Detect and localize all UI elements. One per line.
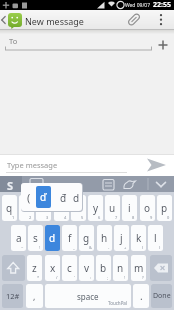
button[interactable]: q [2,195,17,221]
staticText: Done [153,291,171,301]
button[interactable]: i [122,195,137,221]
staticText: 6 [98,215,101,220]
staticText: 7 [115,215,118,220]
button[interactable]: ď [36,186,51,208]
staticText: 8 [132,215,135,220]
staticText: space [77,291,99,302]
staticText: S [7,178,14,193]
staticText: . [140,289,143,303]
staticText: 3 [46,215,49,220]
button[interactable]: d [45,225,60,251]
staticText: + [124,245,127,250]
staticText: a [16,231,22,245]
staticText: 9 [150,215,153,220]
button[interactable]: a [11,225,26,251]
staticText: ; [107,275,109,280]
staticText: đ [60,191,67,205]
staticText: ( [142,245,144,250]
staticText: x [50,261,56,275]
button[interactable]: f [62,225,77,251]
staticText: To [9,36,18,46]
staticText: n [117,261,124,275]
staticText: ) [159,245,161,250]
staticText: q [6,201,13,215]
staticText: 0 [167,215,170,220]
staticText: * [37,275,40,280]
button[interactable]: l [148,225,163,251]
staticText: ~ [21,245,24,250]
staticText: g [83,231,90,245]
staticText: k [136,231,142,245]
staticText: , [33,290,36,302]
staticText: / [56,275,58,280]
button[interactable]: w [19,195,34,221]
staticText: ? [142,275,144,280]
staticText: _ [73,245,75,250]
staticText: 2 [29,215,32,220]
staticText: p [161,201,168,215]
staticText: 5 [81,215,84,220]
staticText: s [33,231,38,245]
button[interactable] [0,176,174,192]
button[interactable]: p [157,195,172,221]
staticText: 4 [64,215,67,220]
button[interactable]: , [26,284,43,308]
button[interactable]: c [62,255,77,281]
button[interactable] [0,176,22,192]
staticText: d [49,231,56,245]
staticText: d [73,191,80,205]
button[interactable] [150,255,172,281]
staticText: ď [40,190,47,204]
button[interactable]: m [131,255,146,281]
staticText: Wed 09/07 [125,2,151,9]
staticText: ' [74,275,75,280]
staticText: Type message [7,160,58,170]
button[interactable]: o [140,195,155,221]
staticText: w [23,201,31,215]
button[interactable]: y [88,195,103,221]
button[interactable]: space [45,284,131,308]
staticText: ( [27,190,31,205]
button[interactable]: 12# [2,284,23,308]
staticText: ! [39,245,41,250]
button[interactable]: g [79,225,94,251]
button[interactable]: z [27,255,42,281]
button[interactable]: s [28,225,43,251]
button[interactable]: x [45,255,60,281]
staticText: z [32,261,37,275]
staticText: b [100,261,107,275]
staticText: m [134,261,144,275]
button[interactable]: t [71,195,86,221]
staticText: o [144,201,151,215]
button[interactable]: . [133,284,149,308]
staticText: TouchPal [108,300,128,306]
button[interactable]: h [97,225,112,251]
staticText: c [67,261,72,275]
button[interactable] [2,255,25,281]
button[interactable]: r [54,195,69,221]
staticText: f [68,231,72,245]
staticText: : [90,275,92,280]
staticText: r [59,201,64,215]
staticText: e [41,201,47,215]
button[interactable]: n [113,255,128,281]
button[interactable]: v [79,255,94,281]
staticText: ! [124,275,126,280]
button[interactable]: b [96,255,111,281]
staticText: v [84,261,90,275]
staticText: h [101,231,108,245]
staticText: 1 [12,215,15,220]
staticText: & [89,245,92,250]
staticText: j [120,231,123,245]
button[interactable]: e [36,195,51,221]
button[interactable] [8,13,22,27]
staticText: 22:55 [153,0,171,10]
staticText: t [77,201,81,215]
button[interactable]: u [105,195,120,221]
button[interactable]: k [131,225,146,251]
staticText: l [154,231,157,245]
button[interactable]: j [114,225,129,251]
button[interactable]: Done [151,284,172,308]
staticText: 12# [6,291,20,301]
staticText: i [128,201,131,215]
